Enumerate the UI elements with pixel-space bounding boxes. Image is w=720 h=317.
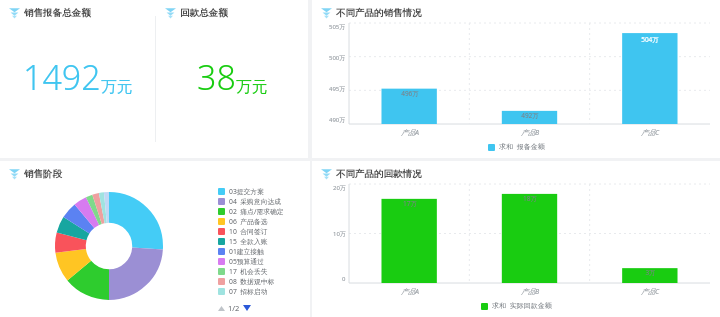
staticText: 产品A [401,287,419,297]
button[interactable]: 02 痛点/需求确定 [218,207,306,216]
button[interactable]: 06 产品备选 [218,217,306,226]
staticText: 3万 [645,268,656,277]
staticText: 17万 [403,199,417,208]
staticText: 10 合同签订 [229,227,268,236]
button[interactable]: 销售阶段 饼图 [55,192,163,300]
button[interactable]: 求和 报备金额 [488,142,545,152]
staticText: 10万 [333,230,346,238]
button[interactable]: 回款总金额 [156,0,236,21]
staticText: 38 [197,54,236,100]
staticText: 不同产品的销售情况 [336,7,422,19]
staticText: 495万 [329,85,346,93]
staticText: 08 数据观中标 [229,277,275,286]
button[interactable]: 05预算通过 [218,257,306,266]
button[interactable]: 15 全款入账 [218,237,306,246]
staticText: 1492 [23,54,101,100]
staticText: 504万 [641,35,659,44]
button[interactable]: 04 采购意向达成 [218,197,306,206]
button[interactable]: 上一页 [218,303,251,313]
button[interactable]: 求和 实际回款金额 [481,301,552,311]
staticText: 销售阶段 [24,168,62,180]
staticText: 万元 [236,77,268,97]
button[interactable]: 不同产品的销售情况 [312,0,430,21]
staticText: 不同产品的回款情况 [336,168,422,180]
staticText: 01建立接触 [229,247,264,256]
staticText: 490万 [329,116,346,124]
staticText: 17 机会丢失 [229,267,268,276]
staticText: 产品C [641,287,660,297]
staticText: 回款总金额 [180,7,228,19]
staticText: 产品B [521,287,540,297]
staticText: 求和 报备金额 [499,142,545,152]
staticText: 销售报备总金额 [24,7,91,19]
staticText: 产品A [401,128,419,138]
button[interactable]: 17 机会丢失 [218,267,306,276]
staticText: 02 痛点/需求确定 [229,207,284,216]
staticText: 15 全款入账 [229,237,268,246]
staticText: 0 [342,275,346,283]
button[interactable]: 不同产品的回款情况 [312,161,430,182]
button[interactable]: 销售报备总金额 [0,0,99,21]
staticText: 产品B [521,128,540,138]
other: 上一页 [218,305,225,312]
button[interactable]: 回款总金额 [156,0,308,158]
button[interactable]: 销售报备总金额 [0,0,155,158]
staticText: 496万 [401,89,419,98]
button[interactable]: 销售阶段 [0,161,70,182]
staticText: 1/2 [228,303,240,313]
staticText: 492万 [521,111,539,120]
staticText: 18万 [523,194,537,203]
button[interactable]: 07 招标启动 [218,287,306,296]
staticText: 万元 [101,77,133,97]
staticText: 06 产品备选 [229,217,268,226]
staticText: 500万 [329,54,346,62]
staticText: 07 招标启动 [229,287,268,296]
staticText: 03提交方案 [229,187,264,196]
staticText: 04 采购意向达成 [229,197,282,206]
staticText: 求和 实际回款金额 [492,301,552,311]
button[interactable]: 08 数据观中标 [218,277,306,286]
staticText: 505万 [329,23,346,31]
staticText: 20万 [333,184,346,192]
other: 下一页 [243,304,251,312]
button[interactable]: 01建立接触 [218,247,306,256]
staticText: 05预算通过 [229,257,264,266]
button[interactable]: 03提交方案 [218,187,306,196]
button[interactable]: 10 合同签订 [218,227,306,236]
staticText: 产品C [641,128,660,138]
